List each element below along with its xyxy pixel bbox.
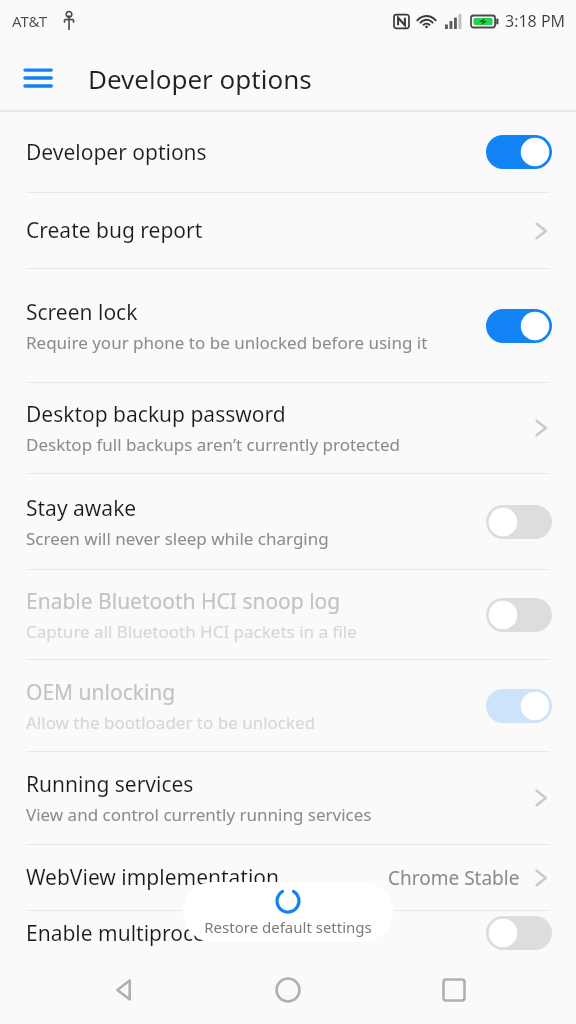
button[interactable]: WebView implementation <box>0 845 576 910</box>
staticText: Screen lock <box>26 298 138 327</box>
staticText: View and control currently running servi… <box>26 803 372 826</box>
button[interactable]: Home <box>245 955 331 1024</box>
button[interactable]: Open navigation menu <box>14 51 68 105</box>
button[interactable]: Toggle off <box>486 598 552 632</box>
button[interactable]: Recent apps <box>411 955 497 1024</box>
button[interactable]: Developer options <box>0 112 576 192</box>
button[interactable]: Enable Bluetooth HCI snoop log <box>0 570 576 659</box>
button[interactable]: Screen lock <box>0 269 576 382</box>
button[interactable]: Enable multiprocess WebView <box>0 911 576 955</box>
staticText: Desktop full backups aren’t currently pr… <box>26 433 401 456</box>
button[interactable]: Stay awake <box>0 474 576 569</box>
staticText: Running services <box>26 770 194 799</box>
button[interactable]: Toggle on <box>486 689 552 723</box>
staticText: AT&T <box>12 11 47 31</box>
staticText: Developer options <box>26 138 207 167</box>
button[interactable]: Restore default settings <box>183 882 393 942</box>
button[interactable]: Create bug report <box>0 193 576 268</box>
staticText: Enable Bluetooth HCI snoop log <box>26 587 341 616</box>
button[interactable]: OEM unlocking <box>0 660 576 751</box>
staticText: Restore default settings <box>204 917 372 937</box>
staticText: WebView implementation <box>26 863 280 892</box>
staticText: Developer options <box>88 61 312 96</box>
button[interactable]: Desktop backup password <box>0 383 576 473</box>
button[interactable]: Toggle off <box>486 916 552 950</box>
staticText: Require your phone to be unlocked before… <box>26 331 428 354</box>
button[interactable]: Running services <box>0 752 576 844</box>
staticText: Chrome Stable <box>388 865 520 891</box>
staticText: Capture all Bluetooth HCI packets in a f… <box>26 620 357 643</box>
button[interactable]: Toggle off <box>486 505 552 539</box>
staticText: Stay awake <box>26 494 137 523</box>
button[interactable]: Toggle on <box>486 309 552 343</box>
staticText: Desktop backup password <box>26 400 286 429</box>
button[interactable]: Toggle on <box>486 135 552 169</box>
staticText: Screen will never sleep while charging <box>26 527 329 550</box>
staticText: 3:18 PM <box>505 10 566 32</box>
button[interactable]: Back <box>80 955 166 1024</box>
staticText: Create bug report <box>26 216 203 245</box>
staticText: OEM unlocking <box>26 678 176 707</box>
staticText: Enable multiprocess WebView <box>26 919 321 948</box>
staticText: Allow the bootloader to be unlocked <box>26 711 316 734</box>
